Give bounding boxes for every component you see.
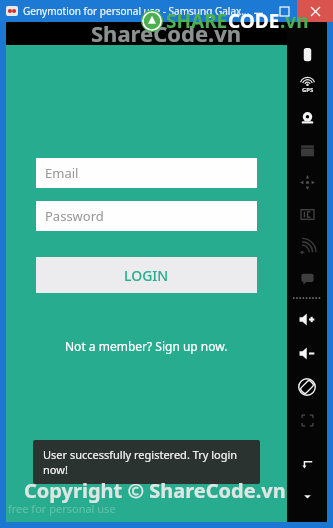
button[interactable]: Identifiers xyxy=(287,198,327,230)
staticText: Genymotion for personal use - Samsung Ga… xyxy=(23,4,250,18)
button[interactable]: Video xyxy=(287,134,327,166)
button[interactable]: GPS xyxy=(287,70,327,102)
staticText: free for personal use xyxy=(8,501,116,516)
staticText: User successfully registered. Try login … xyxy=(43,447,238,477)
staticText: SHARE xyxy=(166,8,228,34)
staticText: Copyright © ShareCode.vn xyxy=(24,477,286,504)
staticText: CODE xyxy=(228,8,280,34)
button[interactable]: Camera xyxy=(287,102,327,134)
staticText: Email xyxy=(45,164,79,182)
staticText: .vn xyxy=(280,8,309,34)
button[interactable]: Minimize xyxy=(245,0,271,22)
button[interactable]: Volume down xyxy=(287,336,327,370)
button[interactable]: Fullscreen xyxy=(287,404,327,436)
staticText: Password xyxy=(45,207,104,225)
button[interactable]: Network xyxy=(287,230,327,262)
button[interactable]: LOGIN xyxy=(36,257,257,293)
button[interactable]: Rotate xyxy=(287,370,327,404)
button[interactable]: Back xyxy=(287,448,327,480)
button[interactable]: Navigation pad xyxy=(287,166,327,198)
staticText: ShareCode.vn xyxy=(91,18,242,48)
button[interactable]: Battery xyxy=(287,38,327,70)
button[interactable]: Volume up xyxy=(287,302,327,336)
button[interactable]: Close xyxy=(297,0,333,22)
button[interactable]: Password xyxy=(36,201,257,231)
button[interactable]: Not a member? Sign up now. xyxy=(6,335,287,357)
button[interactable]: Email xyxy=(36,158,257,188)
button[interactable]: Maximize xyxy=(271,0,297,22)
button[interactable]: Home xyxy=(287,480,327,512)
button[interactable]: SMS xyxy=(287,262,327,294)
staticText: LOGIN xyxy=(124,266,169,285)
staticText: GPS xyxy=(302,86,314,94)
staticText: Not a member? Sign up now. xyxy=(65,338,228,354)
